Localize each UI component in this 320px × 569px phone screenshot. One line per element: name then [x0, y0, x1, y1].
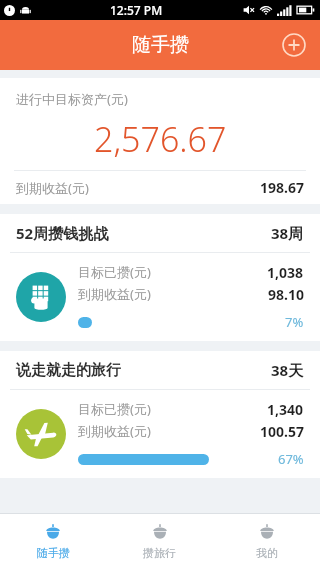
staticText: 说走就走的旅行	[16, 361, 121, 380]
staticText: 到期收益(元)	[78, 422, 151, 440]
staticText: 7%	[285, 313, 304, 331]
staticText: 2,576.67	[94, 116, 227, 162]
staticText: 12:57 PM	[110, 2, 163, 18]
button[interactable]: 进行中目标资产(元)	[0, 78, 320, 204]
staticText: 100.57	[260, 422, 304, 441]
staticText: 随手攒	[37, 546, 70, 560]
staticText: 目标已攒(元)	[78, 263, 151, 281]
staticText: 198.67	[260, 178, 304, 197]
staticText: 攒旅行	[143, 546, 176, 560]
staticText: 98.10	[268, 285, 304, 304]
staticText: 38周	[271, 223, 304, 243]
staticText: 1,038	[267, 263, 304, 282]
button[interactable]: 我的	[213, 514, 320, 569]
button[interactable]: Add goal	[278, 29, 310, 61]
button[interactable]: 说走就走的旅行	[0, 351, 320, 478]
button[interactable]: 52周攒钱挑战	[0, 214, 320, 341]
staticText: 到期收益(元)	[78, 285, 151, 303]
staticText: 到期收益(元)	[16, 179, 89, 197]
staticText: 我的	[256, 546, 278, 560]
staticText: 进行中目标资产(元)	[16, 90, 128, 108]
button[interactable]: 随手攒	[0, 514, 106, 569]
staticText: 目标已攒(元)	[78, 400, 151, 418]
button[interactable]: 攒旅行	[106, 514, 213, 569]
staticText: 随手攒	[132, 33, 189, 57]
staticText: 38天	[271, 360, 304, 380]
staticText: 52周攒钱挑战	[16, 223, 109, 243]
staticText: 1,340	[267, 400, 304, 419]
staticText: 67%	[278, 450, 304, 468]
